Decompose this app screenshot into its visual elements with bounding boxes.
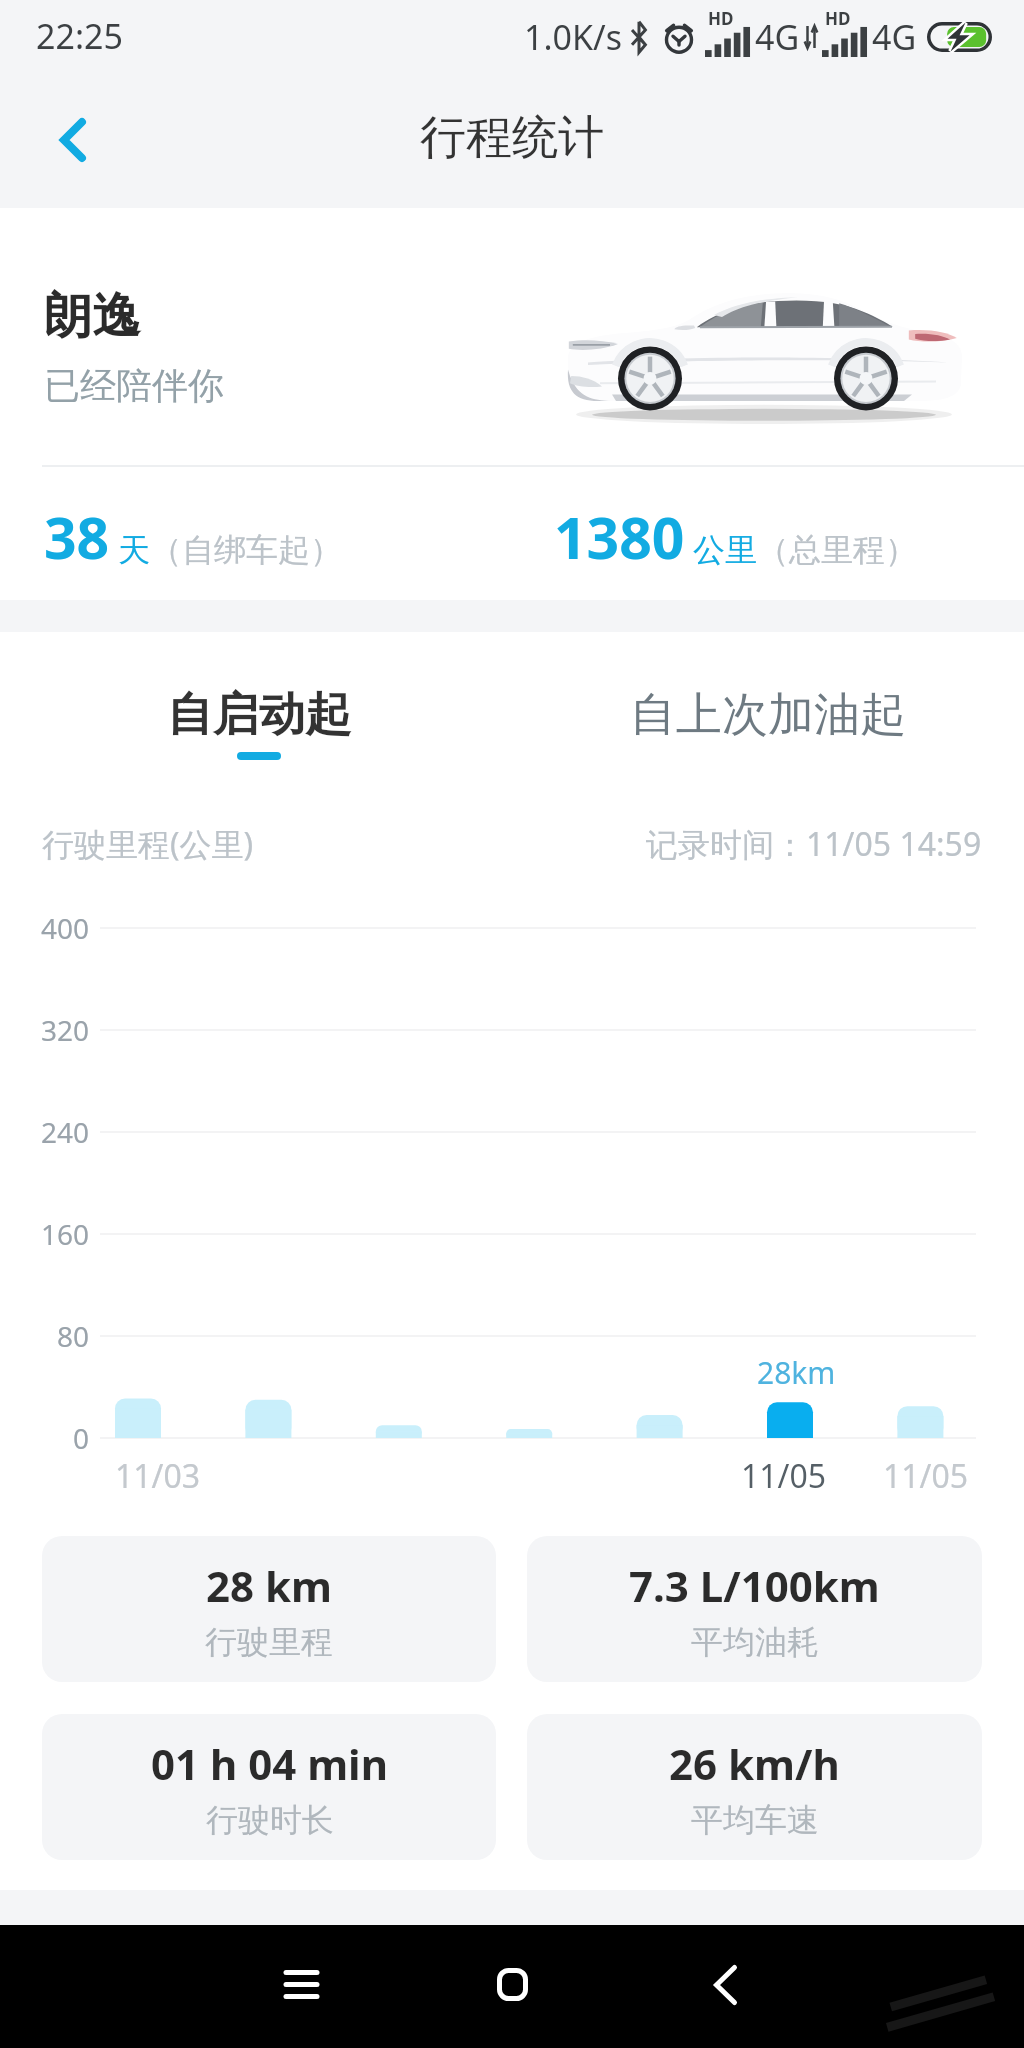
staticText: 160 [41,1215,90,1253]
staticText: 1380 [554,498,685,576]
staticText: 11/05 [741,1454,827,1498]
staticText: 公里 [693,530,757,570]
button[interactable]: 28 km [42,1536,496,1682]
staticText: 行驶里程 [205,1622,333,1662]
staticText: （自绑车起） [150,530,342,570]
staticText: 自启动起 [167,686,351,744]
staticText: 4G [755,14,800,60]
button[interactable]: Recent apps [221,1925,381,2048]
staticText: 朗逸 [44,286,140,346]
staticText: 11/03 [115,1454,201,1498]
staticText: 26 km/h [669,1735,840,1792]
staticText: 已经陪伴你 [44,363,224,408]
staticText: 240 [41,1113,90,1151]
staticText: （总里程） [757,530,917,570]
staticText: 自上次加油起 [630,686,906,744]
staticText: 7.3 L/100km [629,1557,880,1614]
staticText: 4G [872,14,917,60]
button[interactable]: Home [432,1925,592,2048]
staticText: 平均油耗 [691,1622,819,1662]
staticText: 0 [73,1419,90,1457]
staticText: 平均车速 [691,1800,819,1840]
staticText: HD [825,7,851,30]
staticText: 28km [757,1352,836,1393]
button[interactable]: Back [645,1925,805,2048]
button[interactable]: 自启动起 [143,680,375,766]
staticText: 320 [41,1011,90,1049]
staticText: 天 [118,530,150,570]
staticText: 行程统计 [420,109,604,167]
staticText: 28 km [206,1557,332,1614]
staticText: 11/05 [883,1454,969,1498]
staticText: 记录时间：11/05 14:59 [646,822,982,866]
staticText: 1.0K/s [524,14,622,60]
staticText: 22:25 [36,13,123,59]
staticText: 01 h 04 min [151,1735,388,1792]
staticText: HD [708,7,734,30]
staticText: 400 [41,909,90,947]
staticText: 80 [57,1317,90,1355]
staticText: 38 [44,498,110,576]
button[interactable]: 01 h 04 min [42,1714,496,1860]
button[interactable]: 7.3 L/100km [527,1536,982,1682]
staticText: 行驶时长 [206,1800,334,1840]
staticText: 行驶里程(公里) [42,822,254,866]
button[interactable]: Back [18,85,128,195]
button[interactable]: 自上次加油起 [606,680,930,750]
button[interactable]: 26 km/h [527,1714,982,1860]
